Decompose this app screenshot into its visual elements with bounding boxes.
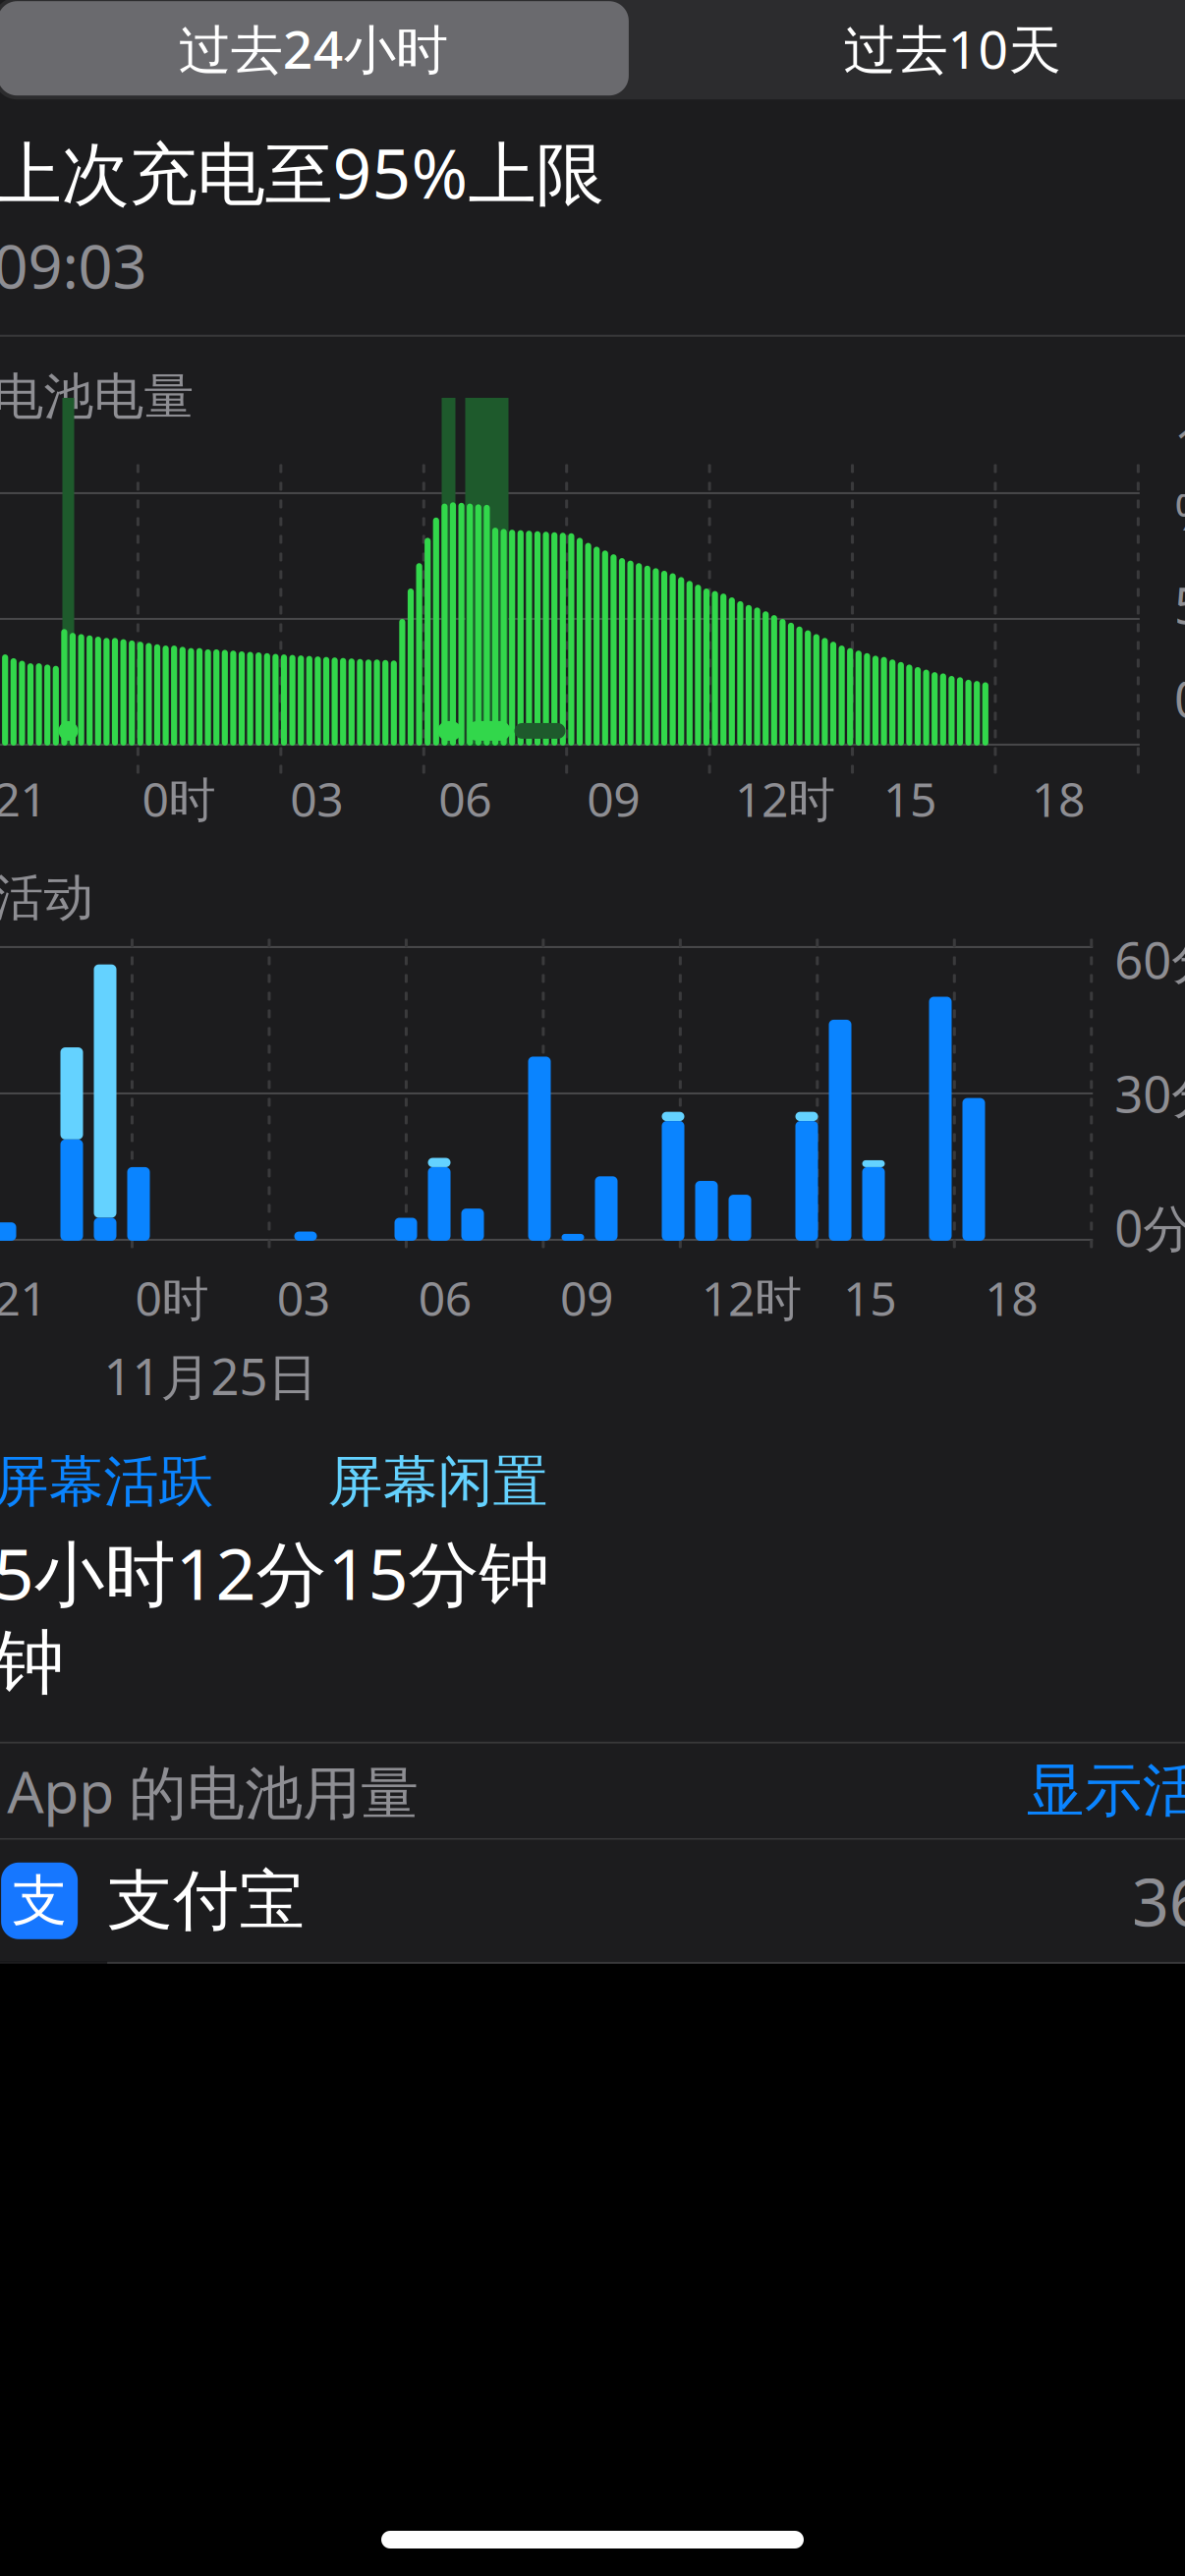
staticText: 15 — [843, 1266, 896, 1329]
staticText: 0分钟 — [1114, 1194, 1185, 1260]
staticText: 0% — [1174, 665, 1185, 731]
staticText: 过去10天 — [844, 14, 1061, 83]
staticText: 18 — [985, 1266, 1038, 1329]
staticText: 上次充电至95%上限 — [0, 127, 604, 217]
staticText: 12时 — [702, 1266, 802, 1329]
staticText: 显示活动 — [1026, 1755, 1185, 1826]
staticText: 活动 — [0, 867, 94, 928]
staticText: 0时 — [142, 767, 216, 830]
staticText: 21 — [0, 1266, 47, 1329]
staticText: App 的电池用量 — [7, 1752, 419, 1829]
staticText: 100% — [1174, 412, 1185, 544]
staticText: 03 — [277, 1266, 330, 1329]
staticText: 09 — [587, 767, 640, 830]
button[interactable]: 支 — [0, 1840, 1185, 1962]
staticText: 50% — [1174, 572, 1185, 638]
staticText: 06 — [418, 1266, 471, 1329]
staticText: 03 — [290, 767, 343, 830]
staticText: 0时 — [135, 1266, 209, 1329]
staticText: 15 — [883, 767, 936, 830]
staticText: 60分钟 — [1114, 926, 1185, 992]
staticText: 30分钟 — [1114, 1060, 1185, 1126]
button[interactable]: 过去24小时 — [0, 0, 633, 99]
staticText: 支付宝 — [107, 1861, 305, 1941]
staticText: 09:03 — [0, 225, 147, 305]
staticText: 15分钟 — [328, 1525, 550, 1619]
staticText: 21 — [0, 767, 47, 830]
staticText: 09 — [560, 1266, 613, 1329]
staticText: 06 — [438, 767, 491, 830]
staticText: 18 — [1032, 767, 1085, 830]
staticText: 5小时12分钟 — [0, 1525, 327, 1706]
staticText: 36% — [1132, 1857, 1185, 1944]
button[interactable]: 过去10天 — [633, 0, 1185, 99]
staticText: 屏幕活跃 — [0, 1448, 214, 1516]
staticText: 支 — [12, 1867, 67, 1935]
staticText: 11月25日 — [104, 1343, 318, 1409]
staticText: 12时 — [735, 767, 835, 830]
staticText: 电池电量 — [0, 366, 194, 427]
button[interactable]: 显示活动 — [1026, 1755, 1185, 1826]
staticText: 过去24小时 — [179, 14, 448, 83]
staticText: 屏幕闲置 — [328, 1448, 548, 1516]
